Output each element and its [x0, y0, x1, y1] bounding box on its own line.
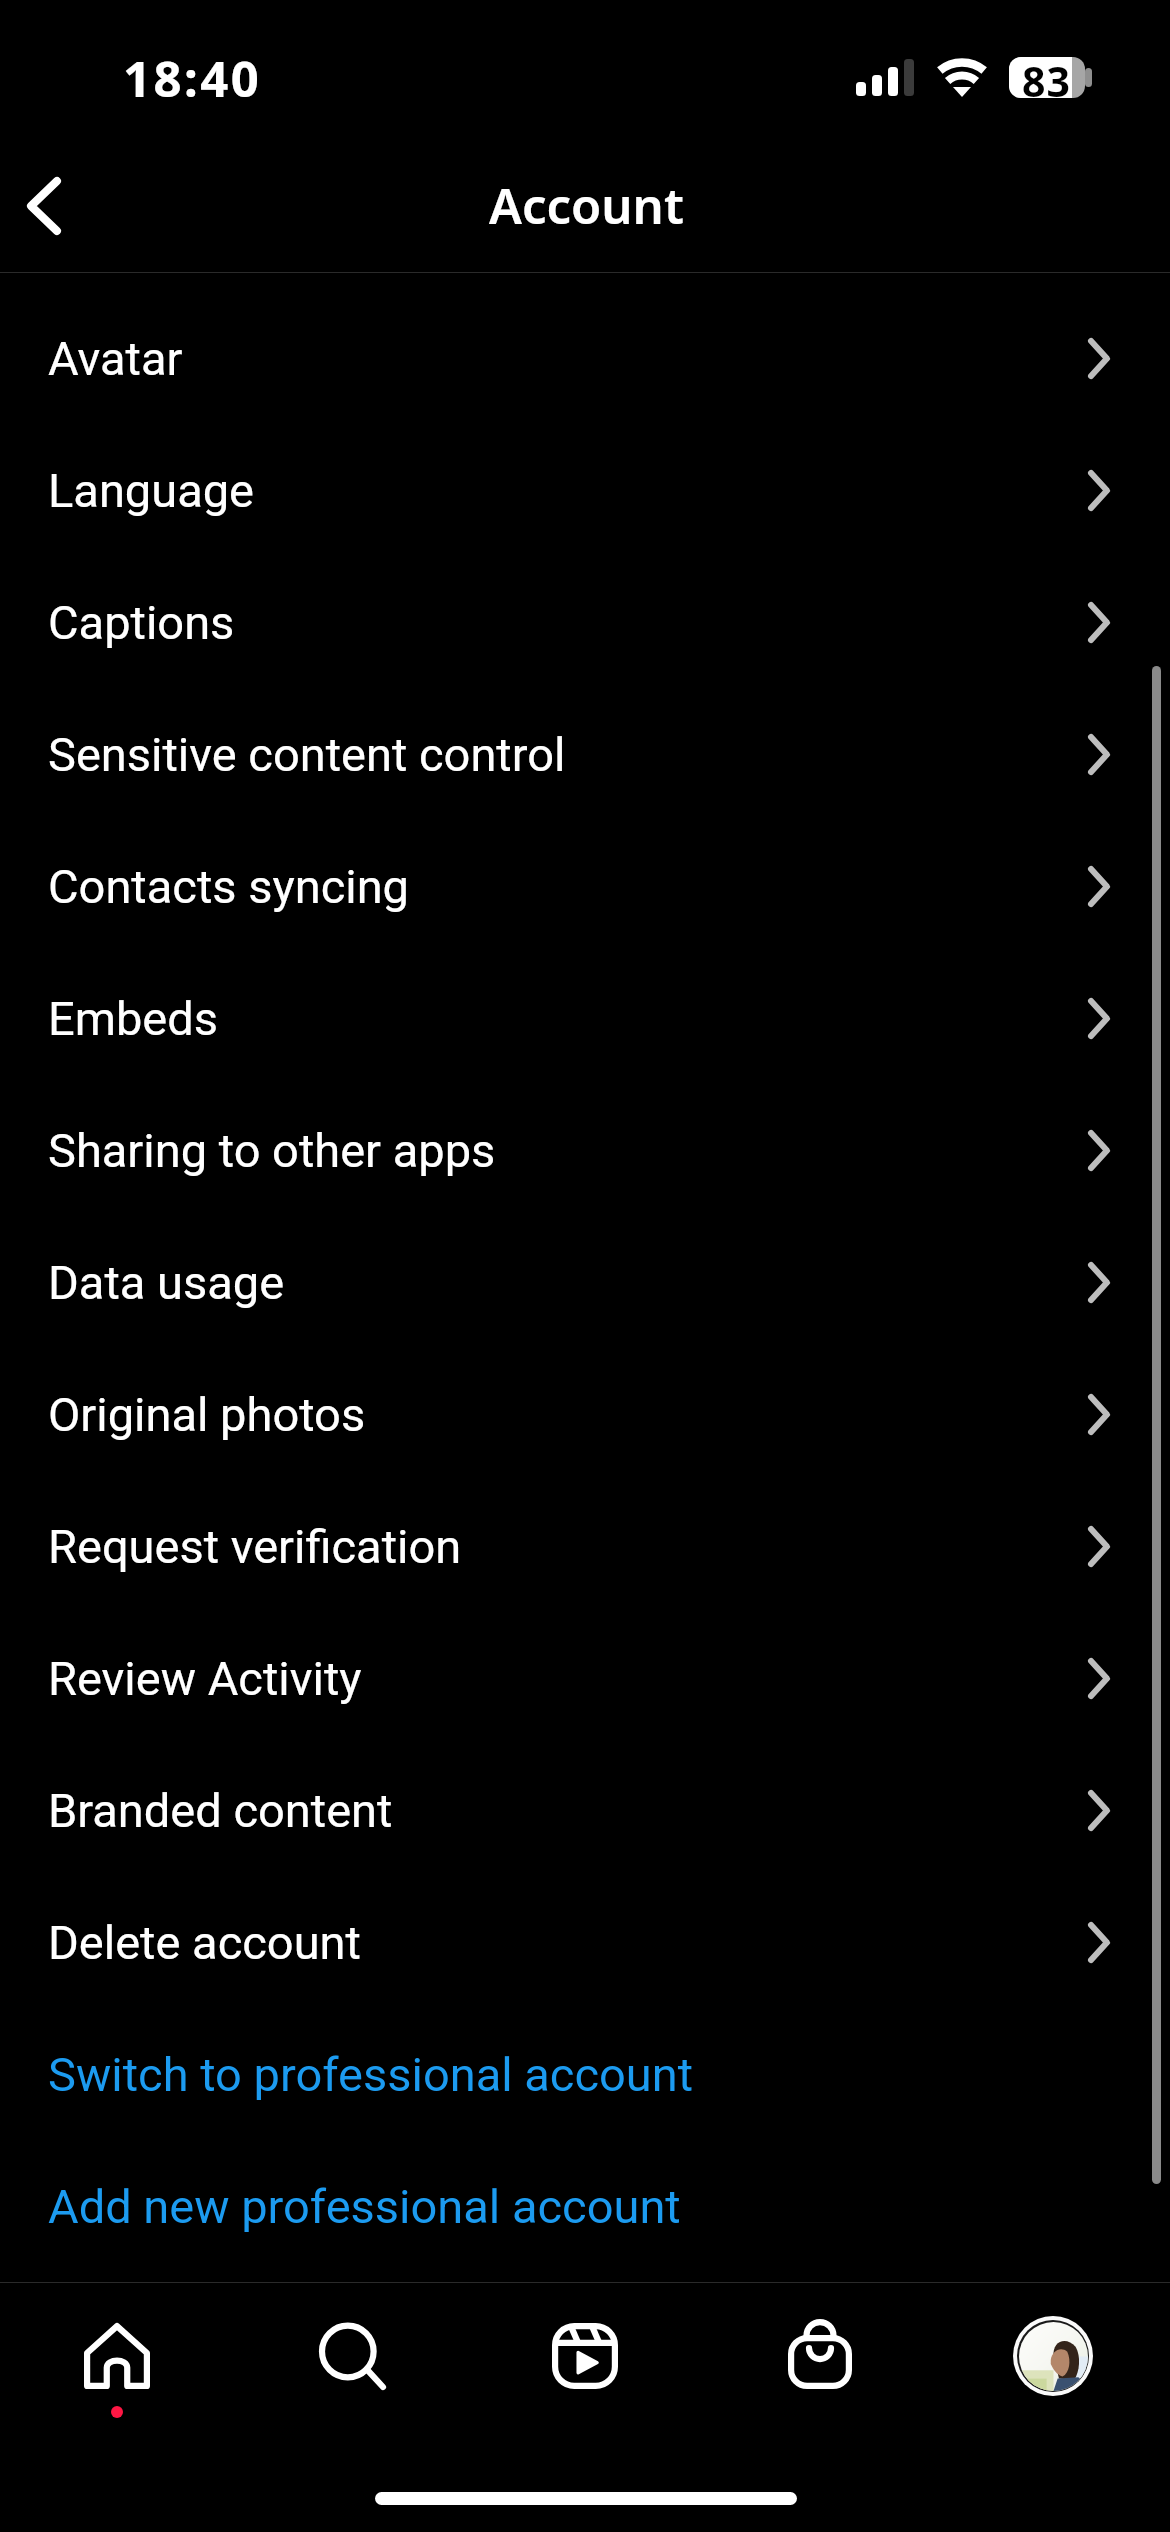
button[interactable]: Review Activity — [0, 1612, 1170, 1744]
button[interactable]: Shop — [741, 2298, 897, 2428]
button[interactable]: Add new professional account — [0, 2140, 1170, 2272]
staticText: Switch to professional account — [48, 2047, 694, 2102]
button[interactable]: Original photos — [0, 1348, 1170, 1480]
staticText: Data usage — [48, 1255, 1088, 1310]
button[interactable]: Back — [0, 150, 104, 262]
staticText: Captions — [48, 595, 1088, 650]
button[interactable]: Delete account — [0, 1876, 1170, 2008]
staticText: Branded content — [48, 1783, 1088, 1838]
staticText: Original photos — [48, 1387, 1088, 1442]
staticText: Embeds — [48, 991, 1088, 1046]
staticText: 18:40 — [123, 45, 262, 112]
button[interactable]: Embeds — [0, 952, 1170, 1084]
staticText: Add new professional account — [48, 2179, 681, 2234]
staticText: Language — [48, 463, 1088, 518]
staticText: Review Activity — [48, 1651, 1088, 1706]
button[interactable]: Sharing to other apps — [0, 1084, 1170, 1216]
button[interactable]: Request verification — [0, 1480, 1170, 1612]
button[interactable]: Profile — [975, 2298, 1131, 2428]
staticText: Delete account — [48, 1915, 1088, 1970]
button[interactable]: Contacts syncing — [0, 820, 1170, 952]
button[interactable]: Home — [39, 2298, 195, 2428]
button[interactable]: Captions — [0, 556, 1170, 688]
staticText: Contacts syncing — [48, 859, 1088, 914]
staticText: Sharing to other apps — [48, 1123, 1088, 1178]
button[interactable]: Avatar — [0, 292, 1170, 424]
button[interactable]: Branded content — [0, 1744, 1170, 1876]
button[interactable]: Language — [0, 424, 1170, 556]
staticText: Avatar — [48, 331, 1088, 386]
staticText: 83 — [1022, 53, 1071, 108]
staticText: Request verification — [48, 1519, 1088, 1574]
button[interactable]: Search — [273, 2298, 429, 2428]
button[interactable]: Switch to professional account — [0, 2008, 1170, 2140]
button[interactable]: Sensitive content control — [0, 688, 1170, 820]
button[interactable]: Data usage — [0, 1216, 1170, 1348]
staticText: Account — [489, 172, 684, 239]
button[interactable]: Reels — [507, 2298, 663, 2428]
staticText: Sensitive content control — [48, 727, 1088, 782]
